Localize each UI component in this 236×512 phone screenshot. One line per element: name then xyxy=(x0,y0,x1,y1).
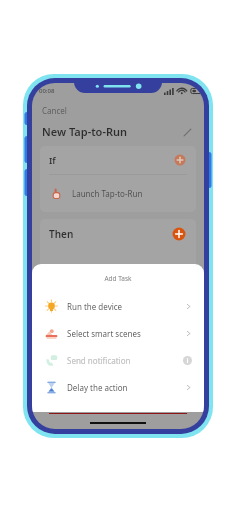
staticText: Select smart scenes xyxy=(67,328,141,339)
staticText: Delay the action xyxy=(67,382,128,393)
staticText: Run the device xyxy=(67,301,123,312)
staticText: New Tap-to-Run xyxy=(42,124,128,139)
staticText: Launch Tap-to-Run xyxy=(72,188,143,199)
button[interactable]: Edit name xyxy=(180,125,194,139)
staticText: Add Task xyxy=(104,274,132,283)
button[interactable]: Delay the action xyxy=(32,374,204,401)
button[interactable]: Send notification xyxy=(32,347,204,374)
button[interactable]: Add task xyxy=(171,226,187,242)
staticText: If xyxy=(49,154,56,166)
staticText: Then xyxy=(49,227,74,241)
staticText: 00:08 xyxy=(39,87,55,95)
button[interactable]: Select smart scenes xyxy=(32,320,204,347)
button[interactable]: Run the device xyxy=(32,293,204,320)
button[interactable]: Cancel xyxy=(39,102,70,119)
button[interactable]: Add condition xyxy=(173,153,187,167)
staticText: Send notification xyxy=(67,355,131,366)
staticText: Cancel xyxy=(42,105,67,116)
button[interactable]: Launch Tap-to-Run xyxy=(40,175,196,212)
